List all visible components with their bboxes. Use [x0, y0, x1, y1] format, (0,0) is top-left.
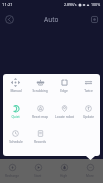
button[interactable]: Scrubbing — [28, 77, 52, 93]
staticText: Twice — [84, 89, 93, 93]
button[interactable]: Quiet — [3, 103, 28, 119]
button[interactable]: Manual — [3, 77, 28, 93]
staticText: Locate robot — [55, 115, 74, 119]
staticText: Edge — [60, 89, 68, 93]
staticText: Records — [34, 140, 46, 144]
staticText: 2.89K/s — [64, 2, 77, 7]
staticText: Scrubbing — [32, 89, 48, 93]
button[interactable]: Recharge — [0, 159, 25, 183]
staticText: Manual — [10, 89, 22, 93]
staticText: Auto — [44, 15, 59, 24]
staticText: More — [86, 174, 94, 178]
button[interactable]: Twice — [76, 77, 100, 93]
button[interactable]: Records — [28, 128, 52, 144]
button[interactable]: High — [51, 159, 77, 183]
staticText: High — [60, 174, 68, 178]
button[interactable]: Locate robot — [52, 103, 76, 119]
staticText: Update — [83, 115, 94, 119]
button[interactable]: Edge — [52, 77, 76, 93]
button[interactable]: Schedule — [3, 128, 28, 144]
staticText: Quiet — [11, 115, 20, 119]
button[interactable]: Start — [25, 159, 51, 183]
button[interactable]: More — [77, 159, 103, 183]
staticText: 11:21 — [2, 2, 13, 8]
staticText: Recharge — [5, 174, 20, 178]
button[interactable]: Reset map — [28, 103, 52, 119]
staticText: Reset map — [32, 115, 48, 119]
staticText: Start — [34, 174, 42, 178]
button[interactable]: Back — [2, 12, 16, 26]
button[interactable]: Update — [76, 103, 100, 119]
button[interactable]: Settings — [87, 12, 101, 26]
staticText: 100% — [91, 2, 101, 7]
staticText: Schedule — [9, 140, 23, 144]
